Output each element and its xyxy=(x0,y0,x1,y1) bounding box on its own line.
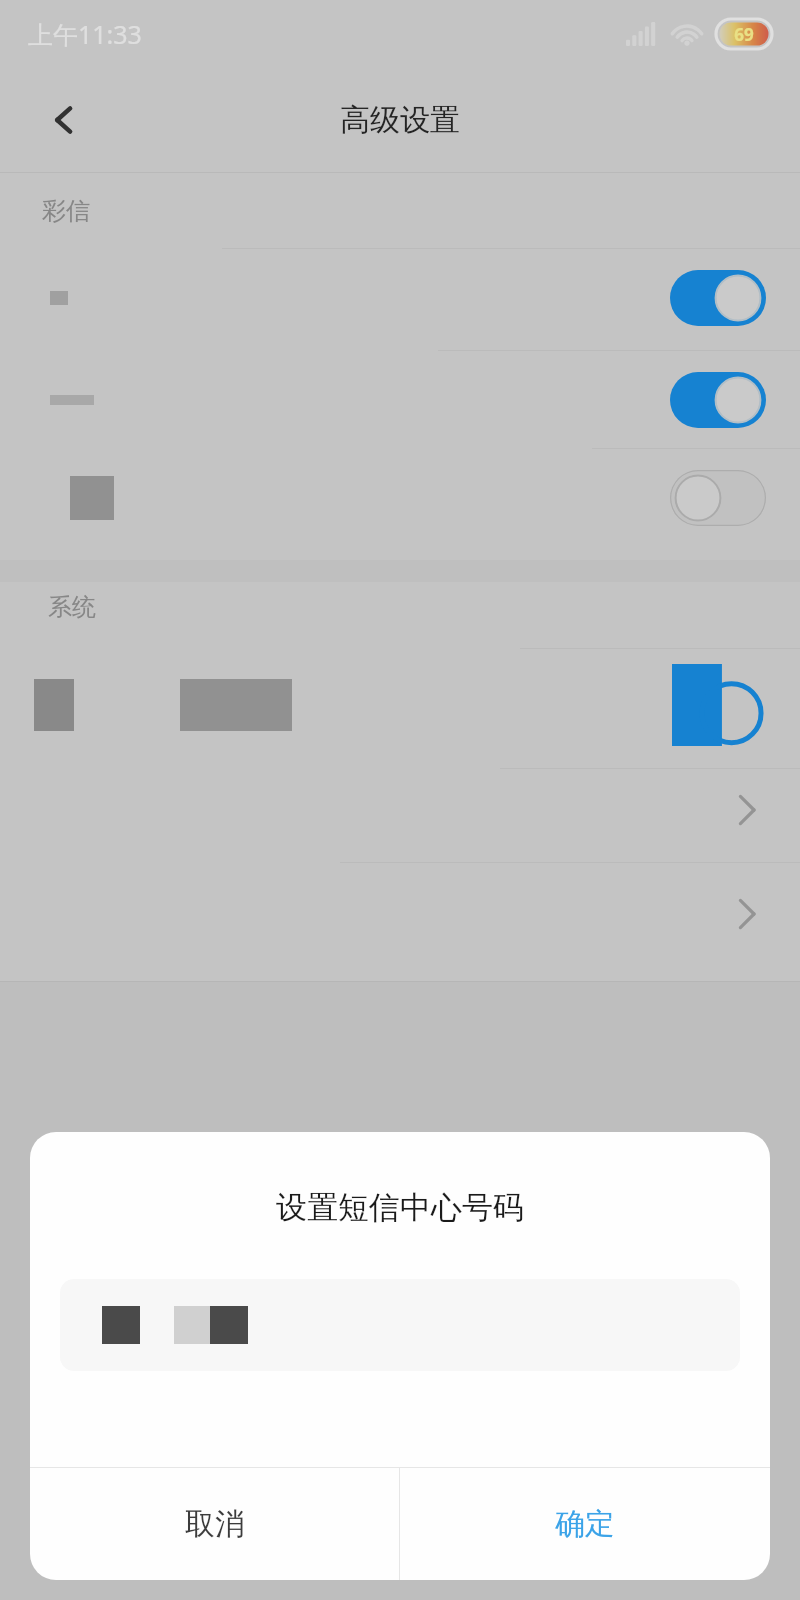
staticText: 彩信 xyxy=(42,196,90,226)
staticText: 上午11:33 xyxy=(28,17,142,51)
staticText: 确定 xyxy=(555,1505,615,1543)
staticText: 69 xyxy=(734,23,754,46)
button[interactable] xyxy=(0,250,800,346)
button[interactable]: Back xyxy=(34,90,94,150)
button[interactable] xyxy=(60,1279,740,1371)
button[interactable] xyxy=(670,270,766,326)
button[interactable] xyxy=(0,450,800,546)
staticText: 取消 xyxy=(185,1505,245,1543)
staticText: 高级设置 xyxy=(340,101,460,139)
button[interactable] xyxy=(670,372,766,428)
button[interactable]: 取消 xyxy=(30,1468,399,1580)
staticText: 系统 xyxy=(48,592,96,622)
staticText: 设置短信中心号码 xyxy=(30,1188,770,1227)
button[interactable] xyxy=(670,470,766,526)
button[interactable]: 确定 xyxy=(400,1468,770,1580)
button[interactable] xyxy=(0,352,800,448)
button[interactable] xyxy=(0,640,800,770)
